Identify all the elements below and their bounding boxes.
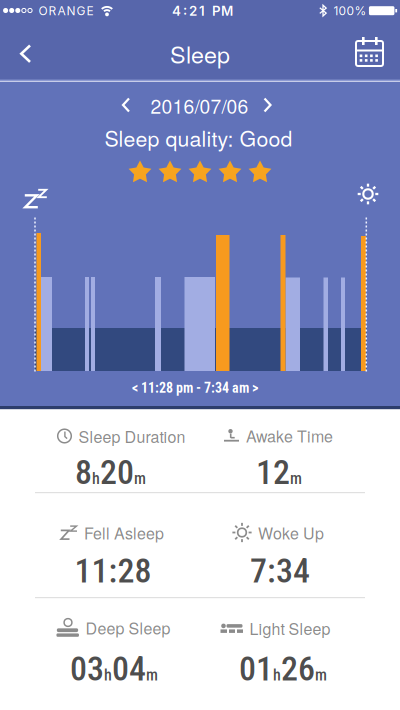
staticText: 7:34 <box>250 551 310 591</box>
staticText: O R A N G E <box>38 4 93 18</box>
staticText: Awake Time <box>246 424 333 447</box>
staticText: 4 : 2 1 <box>172 3 205 19</box>
button[interactable]: Calendar <box>351 35 387 71</box>
staticText: 12m <box>256 453 302 492</box>
staticText: Sleep Duration <box>78 424 185 447</box>
button[interactable]: < 11:28 pm - 7:34 am > <box>132 380 258 396</box>
staticText: Deep Sleep <box>85 616 170 639</box>
staticText: Sleep quality: Good <box>104 122 292 153</box>
staticText: PM <box>212 3 233 19</box>
staticText: Fell Asleep <box>84 521 164 544</box>
staticText: Sleep <box>170 37 230 70</box>
button[interactable]: Back <box>4 38 48 69</box>
staticText: 03h04m <box>70 650 158 688</box>
staticText: 11:28 <box>74 551 151 591</box>
staticText: 8h20m <box>75 453 146 492</box>
button[interactable]: Next day <box>252 90 282 120</box>
button[interactable]: Previous day <box>111 90 141 120</box>
staticText: Woke Up <box>258 521 324 544</box>
staticText: 100% <box>333 4 366 18</box>
staticText: Light Sleep <box>249 616 330 639</box>
staticText: 01h26m <box>239 650 327 688</box>
staticText: 2016/07/06 <box>150 92 248 119</box>
staticText: < 11:28 pm - 7:34 am > <box>132 380 258 396</box>
